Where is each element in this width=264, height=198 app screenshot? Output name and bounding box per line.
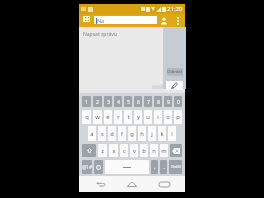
button[interactable]: d bbox=[108, 126, 116, 141]
button[interactable]: Emoji bbox=[94, 160, 103, 174]
staticText: , bbox=[154, 164, 156, 171]
staticText: 9 bbox=[167, 98, 170, 105]
staticText: g bbox=[130, 130, 134, 138]
button[interactable]: k bbox=[158, 126, 166, 141]
button[interactable]: 3 bbox=[104, 96, 112, 107]
button[interactable]: 0 bbox=[174, 96, 182, 107]
button[interactable]: Space bbox=[105, 160, 149, 174]
button[interactable]: Další bbox=[169, 160, 182, 174]
button[interactable]: g bbox=[128, 126, 136, 141]
staticText: u bbox=[146, 113, 150, 121]
button[interactable]: . bbox=[160, 160, 167, 174]
button[interactable]: c bbox=[120, 144, 128, 157]
staticText: Na bbox=[97, 17, 105, 24]
staticText: 2 bbox=[96, 98, 99, 105]
button[interactable]: More options bbox=[173, 14, 182, 27]
staticText: p bbox=[176, 113, 180, 121]
button[interactable]: Home bbox=[121, 176, 143, 192]
button[interactable]: 5 bbox=[124, 96, 132, 107]
button[interactable]: o bbox=[164, 110, 172, 124]
staticText: 21:20 bbox=[167, 5, 183, 13]
button[interactable]: @1# bbox=[82, 160, 92, 174]
staticText: v bbox=[133, 147, 136, 155]
button[interactable]: y bbox=[134, 110, 142, 124]
staticText: 0 bbox=[177, 98, 180, 105]
staticText: Napsat zprávu bbox=[83, 31, 117, 38]
button[interactable]: 2 bbox=[93, 96, 102, 107]
staticText: 1 bbox=[85, 98, 88, 105]
staticText: k bbox=[160, 130, 164, 138]
button[interactable]: 7 bbox=[144, 96, 152, 107]
staticText: a bbox=[90, 130, 94, 138]
staticText: . bbox=[163, 164, 165, 171]
button[interactable]: Odeslat bbox=[167, 68, 183, 76]
button[interactable]: Recents bbox=[153, 176, 175, 192]
button[interactable]: p bbox=[174, 110, 182, 124]
staticText: l bbox=[171, 130, 173, 138]
button[interactable]: 8 bbox=[154, 96, 162, 107]
button[interactable]: n bbox=[150, 144, 158, 157]
staticText: q bbox=[85, 113, 89, 121]
button[interactable]: , bbox=[151, 160, 158, 174]
staticText: i bbox=[157, 113, 159, 121]
staticText: 8 bbox=[157, 98, 160, 105]
button[interactable]: Na bbox=[94, 16, 157, 24]
staticText: 6 bbox=[137, 98, 140, 105]
staticText: Odeslat bbox=[167, 69, 183, 75]
staticText: w bbox=[95, 113, 100, 121]
button[interactable]: q bbox=[82, 110, 91, 124]
button[interactable]: 1 bbox=[82, 96, 91, 107]
button[interactable]: s bbox=[98, 126, 106, 141]
staticText: c bbox=[123, 147, 126, 155]
button[interactable]: w bbox=[93, 110, 102, 124]
staticText: 3 bbox=[107, 98, 110, 105]
button[interactable]: e bbox=[104, 110, 112, 124]
staticText: e bbox=[106, 113, 110, 121]
staticText: b bbox=[142, 147, 146, 155]
button[interactable]: h bbox=[138, 126, 146, 141]
staticText: d bbox=[110, 130, 114, 138]
button[interactable]: 9 bbox=[164, 96, 172, 107]
staticText: 7 bbox=[147, 98, 150, 105]
staticText: @1# bbox=[82, 164, 92, 170]
staticText: y bbox=[137, 113, 140, 121]
button[interactable]: x bbox=[109, 144, 118, 157]
button[interactable]: Attach bbox=[166, 81, 183, 90]
button[interactable]: Contacts list bbox=[83, 16, 90, 22]
staticText: t bbox=[127, 113, 130, 121]
button[interactable]: v bbox=[130, 144, 138, 157]
staticText: r bbox=[117, 113, 120, 121]
button[interactable]: m bbox=[160, 144, 168, 157]
button[interactable]: t bbox=[124, 110, 132, 124]
button[interactable]: 4 bbox=[114, 96, 122, 107]
button[interactable]: a bbox=[88, 126, 96, 141]
staticText: x bbox=[112, 147, 116, 155]
staticText: s bbox=[101, 130, 104, 138]
staticText: f bbox=[121, 130, 123, 138]
staticText: o bbox=[166, 113, 170, 121]
button[interactable]: Backspace bbox=[170, 144, 182, 157]
button[interactable]: u bbox=[144, 110, 152, 124]
staticText: 5 bbox=[127, 98, 130, 105]
staticText: j bbox=[151, 130, 153, 138]
button[interactable]: Back bbox=[89, 176, 111, 192]
staticText: n bbox=[152, 147, 156, 155]
button[interactable]: b bbox=[140, 144, 148, 157]
button[interactable]: j bbox=[148, 126, 156, 141]
staticText: z bbox=[101, 147, 104, 155]
button[interactable]: Shift bbox=[82, 144, 96, 157]
button[interactable]: r bbox=[114, 110, 122, 124]
button[interactable]: i bbox=[154, 110, 162, 124]
button[interactable]: z bbox=[98, 144, 107, 157]
button[interactable]: l bbox=[168, 126, 176, 141]
staticText: h bbox=[140, 130, 144, 138]
button[interactable]: Pick contact bbox=[158, 14, 169, 27]
button[interactable]: f bbox=[118, 126, 126, 141]
staticText: Další bbox=[171, 164, 181, 170]
staticText: m bbox=[161, 147, 167, 155]
button[interactable]: 6 bbox=[134, 96, 142, 107]
staticText: 4 bbox=[117, 98, 120, 105]
